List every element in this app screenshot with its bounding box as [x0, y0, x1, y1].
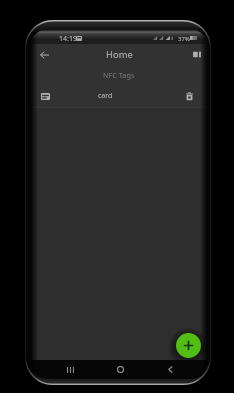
button[interactable]: card	[31, 85, 207, 107]
button[interactable]: Add tag	[176, 333, 201, 358]
button[interactable]: Back	[37, 47, 52, 62]
button[interactable]: Delete	[183, 90, 196, 103]
staticText: NFC Tags	[103, 70, 135, 80]
staticText: Home	[106, 48, 133, 61]
staticText: 37%	[178, 35, 190, 43]
button[interactable]: Recent apps	[63, 362, 78, 377]
button[interactable]: Home	[113, 362, 128, 377]
staticText: 14:19	[59, 34, 77, 44]
button[interactable]: NFC	[189, 47, 204, 62]
button[interactable]: Back	[163, 362, 178, 377]
staticText: card	[98, 91, 113, 101]
